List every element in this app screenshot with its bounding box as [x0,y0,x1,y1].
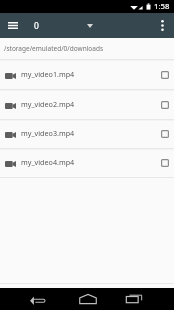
button[interactable]: Navigation menu [0,13,25,38]
staticText: 0 [34,20,39,32]
staticText: my_video2.mp4 [21,99,75,109]
button[interactable]: my_video4.mp4 [0,148,174,177]
button[interactable]: my_video1.mp4 [0,59,174,89]
button[interactable]: Select my_video4.mp4 [161,159,169,167]
staticText: my_video3.mp4 [21,128,75,138]
button[interactable]: Select my_video2.mp4 [161,101,169,109]
staticText: my_video4.mp4 [21,157,75,167]
button[interactable]: More options [150,13,174,38]
staticText: /storage/emulated/0/downloads [4,44,104,53]
button[interactable]: Select my_video1.mp4 [161,71,169,79]
button[interactable]: Home [69,288,107,310]
button[interactable]: my_video3.mp4 [0,119,174,148]
button[interactable]: my_video2.mp4 [0,89,174,119]
button[interactable]: Recent apps [115,288,153,310]
staticText: my_video1.mp4 [21,69,75,79]
button[interactable]: 0 [34,13,93,38]
button[interactable]: Back [18,288,56,310]
button[interactable]: Select my_video3.mp4 [161,130,169,138]
staticText: 1:58 [154,1,170,12]
